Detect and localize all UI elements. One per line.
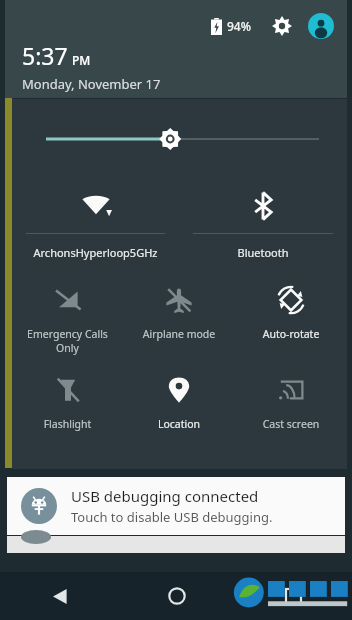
staticText: Airplane mode bbox=[126, 327, 232, 341]
button[interactable]: Airplane mode bbox=[126, 271, 232, 341]
button[interactable]: ArchonsHyperloop5GHz bbox=[26, 179, 165, 260]
staticText: USB debugging connected bbox=[71, 486, 259, 506]
button[interactable]: Back bbox=[0, 572, 118, 620]
button[interactable] bbox=[7, 536, 345, 553]
button[interactable]: Location bbox=[126, 361, 232, 431]
staticText: Emergency Calls Only bbox=[15, 327, 120, 355]
button[interactable]: Settings bbox=[269, 13, 295, 39]
staticText: Location bbox=[126, 417, 232, 431]
button[interactable]: User profile bbox=[307, 12, 335, 40]
button[interactable]: Cast screen bbox=[238, 361, 344, 431]
staticText: Flashlight bbox=[15, 417, 120, 431]
staticText: Cast screen bbox=[238, 417, 344, 431]
button[interactable]: USB debugging connected bbox=[7, 477, 345, 535]
staticText: Touch to disable USB debugging. bbox=[71, 508, 273, 526]
staticText: PM bbox=[72, 52, 91, 68]
button[interactable]: Flashlight bbox=[15, 361, 120, 431]
staticText: Monday, November 17 bbox=[22, 75, 161, 93]
staticText: ArchonsHyperloop5GHz bbox=[26, 245, 165, 260]
button[interactable]: Recent apps bbox=[235, 572, 352, 620]
staticText: Auto-rotate bbox=[238, 327, 344, 341]
button[interactable]: Auto-rotate bbox=[238, 271, 344, 341]
button[interactable]: Emergency Calls Only bbox=[15, 271, 120, 355]
button[interactable]: Bluetooth bbox=[193, 179, 333, 260]
button[interactable]: Home bbox=[118, 572, 235, 620]
button[interactable]: Brightness bbox=[12, 117, 347, 161]
staticText: 5:37 bbox=[22, 40, 68, 71]
staticText: Bluetooth bbox=[193, 245, 333, 260]
staticText: 94% bbox=[227, 18, 251, 34]
